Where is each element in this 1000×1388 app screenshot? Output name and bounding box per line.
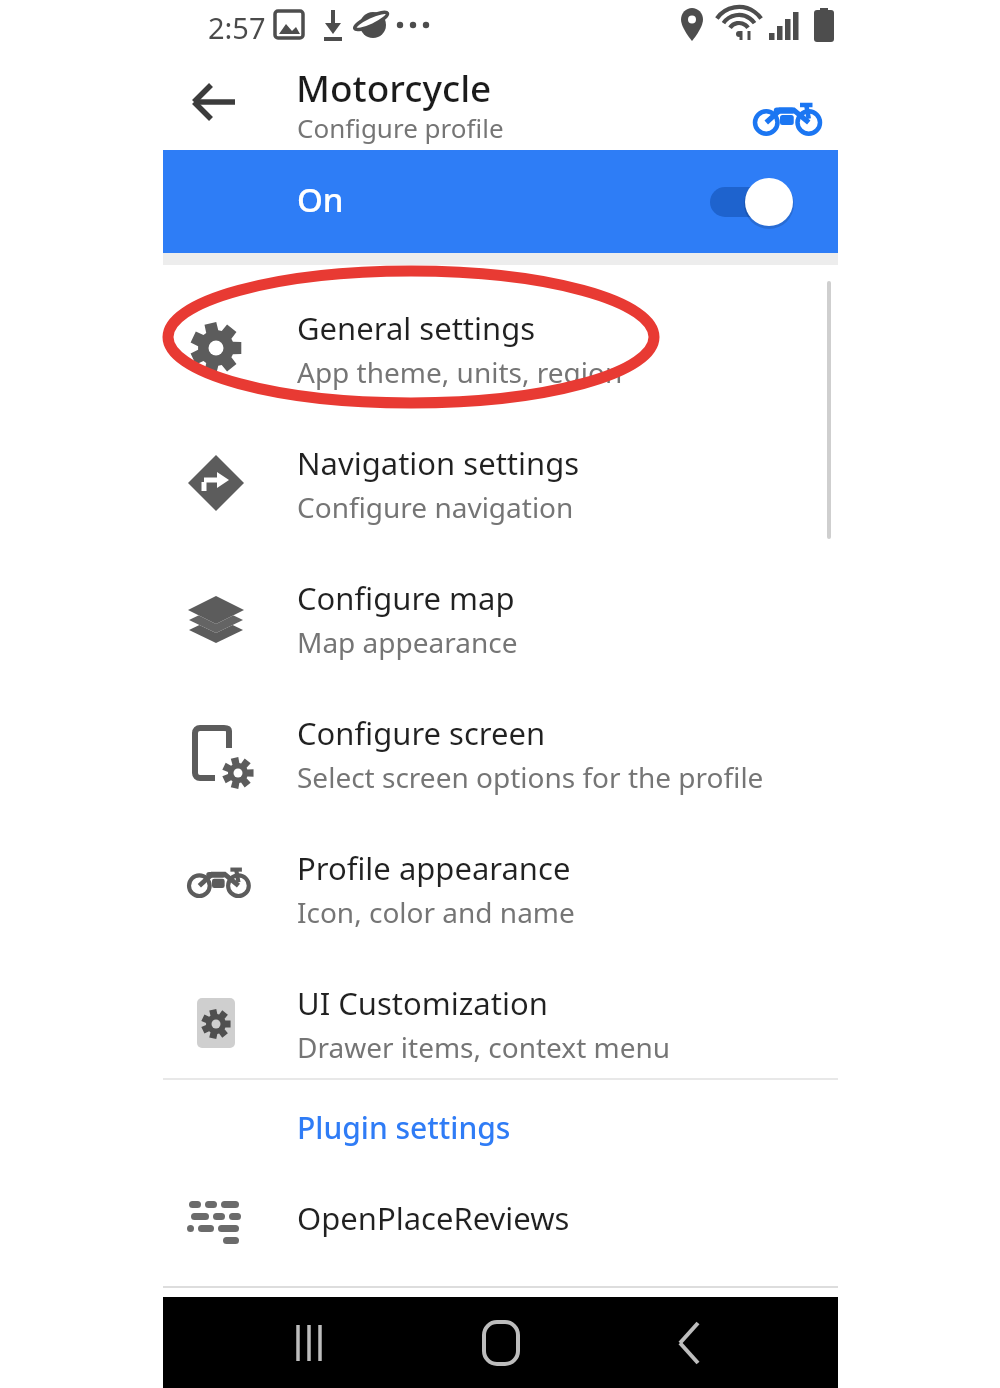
button[interactable]: Navigation settings: [163, 416, 838, 551]
staticText: Map appearance: [297, 623, 518, 661]
staticText: Icon, color and name: [297, 893, 575, 931]
button[interactable]: Profile icon: [743, 74, 815, 146]
staticText: Plugin settings: [297, 1107, 511, 1148]
staticText: Configure navigation: [297, 488, 574, 526]
staticText: App theme, units, region: [297, 353, 623, 391]
staticText: On: [297, 177, 344, 222]
staticText: Configure screen: [297, 712, 546, 754]
staticText: Configure profile: [297, 110, 504, 145]
staticText: Motorcycle: [296, 62, 492, 112]
staticText: Drawer items, context menu: [297, 1028, 671, 1066]
staticText: Select screen options for the profile: [297, 758, 764, 796]
button[interactable]: On: [163, 150, 838, 253]
staticText: OpenPlaceReviews: [297, 1197, 570, 1239]
button[interactable]: Back: [181, 68, 249, 136]
staticText: UI Customization: [297, 982, 548, 1024]
staticText: General settings: [297, 307, 536, 349]
button[interactable]: Recent apps: [264, 1298, 354, 1388]
staticText: Configure map: [297, 577, 515, 619]
button[interactable]: Profile appearance: [163, 821, 838, 956]
button[interactable]: Home: [456, 1298, 546, 1388]
button[interactable]: Back: [647, 1298, 737, 1388]
button[interactable]: Configure map: [163, 551, 838, 686]
button[interactable]: General settings: [163, 281, 838, 416]
button[interactable]: Plugin settings: [163, 1093, 838, 1159]
staticText: 2:57: [208, 8, 266, 47]
staticText: Navigation settings: [297, 442, 580, 484]
staticText: Profile appearance: [297, 847, 571, 889]
button[interactable]: Configure screen: [163, 686, 838, 821]
button[interactable]: UI Customization: [163, 956, 838, 1091]
button[interactable]: OpenPlaceReviews: [163, 1163, 838, 1275]
